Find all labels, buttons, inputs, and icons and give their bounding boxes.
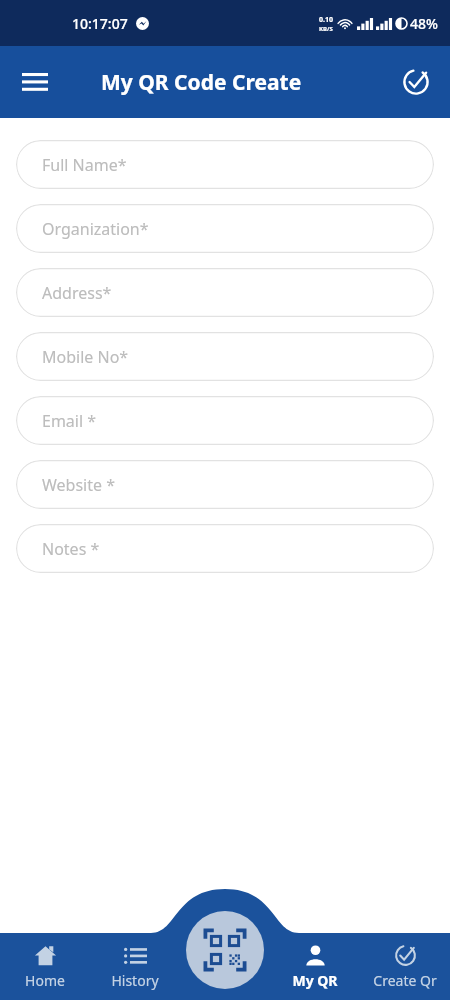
button[interactable]: My QR <box>270 939 360 995</box>
staticText: Email * <box>42 410 97 432</box>
staticText: My QR Code Create <box>101 68 302 97</box>
button[interactable]: Scan QR code <box>186 911 264 989</box>
button[interactable]: Website * <box>16 460 434 509</box>
staticText: Full Name* <box>42 154 127 176</box>
staticText: 10:17:07 <box>72 14 128 33</box>
button[interactable]: Save QR code <box>393 59 439 105</box>
staticText: 48% <box>410 14 438 33</box>
button[interactable]: Open navigation menu <box>10 57 60 107</box>
button[interactable]: Email * <box>16 396 434 445</box>
button[interactable]: Mobile No* <box>16 332 434 381</box>
staticText: Address* <box>42 282 112 304</box>
button[interactable]: Notes * <box>16 524 434 573</box>
staticText: Mobile No* <box>42 346 129 368</box>
staticText: Organization* <box>42 218 149 240</box>
staticText: My QR <box>292 971 338 990</box>
button[interactable]: Address* <box>16 268 434 317</box>
staticText: History <box>111 971 159 990</box>
button[interactable]: History <box>90 939 180 995</box>
button[interactable]: Organization* <box>16 204 434 253</box>
staticText: Website * <box>42 474 115 496</box>
staticText: Create Qr <box>373 971 437 990</box>
button[interactable]: Create Qr <box>360 939 450 995</box>
button[interactable]: Home <box>0 939 90 995</box>
staticText: Home <box>25 971 65 990</box>
button[interactable]: Full Name* <box>16 140 434 189</box>
staticText: KB/S <box>319 25 333 33</box>
staticText: 0.10 <box>319 15 333 25</box>
staticText: Notes * <box>42 538 100 560</box>
